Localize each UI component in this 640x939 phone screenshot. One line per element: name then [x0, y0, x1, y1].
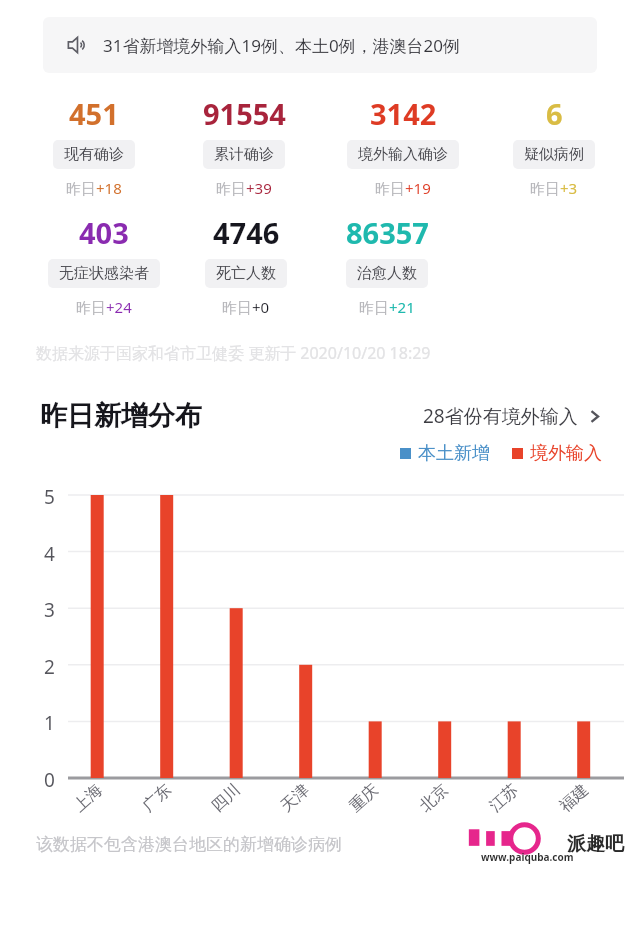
staticText: 福建	[555, 780, 593, 816]
staticText: 重庆	[345, 780, 383, 816]
staticText: 4	[44, 541, 55, 567]
staticText: 上海	[69, 780, 107, 816]
staticText: 昨日+21	[359, 297, 415, 317]
staticText: 境外输入	[530, 442, 602, 465]
button[interactable]: 451	[28, 94, 160, 198]
staticText: 无症状感染者	[59, 264, 149, 283]
staticText: 3	[44, 597, 55, 623]
staticText: 天津	[276, 780, 314, 816]
button[interactable]: 28省份有境外输入	[423, 403, 602, 429]
staticText: 数据来源于国家和省市卫健委 更新于 2020/10/20 18:29	[36, 342, 431, 364]
staticText: 本土新增	[418, 442, 490, 465]
staticText: www.paiquba.com	[481, 850, 574, 864]
staticText: 3142	[370, 94, 437, 133]
staticText: 31省新增境外输入19例、本土0例，港澳台20例	[103, 34, 461, 57]
staticText: 昨日+24	[76, 297, 132, 317]
staticText: 1	[44, 710, 55, 736]
staticText: 现有确诊	[64, 145, 124, 164]
staticText: 28省份有境外输入	[423, 403, 578, 429]
staticText: 昨日+18	[66, 178, 122, 198]
staticText: 境外输入确诊	[358, 145, 448, 164]
staticText: 广东	[138, 780, 176, 816]
staticText: 5	[44, 484, 55, 510]
staticText: 江苏	[485, 780, 523, 816]
button[interactable]: 3142	[328, 94, 478, 198]
button[interactable]: 86357	[312, 213, 462, 317]
button[interactable]: Announcement	[43, 17, 597, 73]
staticText: 北京	[415, 780, 453, 816]
staticText: 0	[44, 767, 55, 793]
staticText: 昨日+0	[222, 297, 270, 317]
staticText: 累计确诊	[214, 145, 274, 164]
staticText: 四川	[207, 780, 245, 816]
staticText: 派趣吧	[567, 832, 624, 856]
staticText: 死亡人数	[216, 264, 276, 283]
staticText: 昨日+3	[530, 178, 578, 198]
staticText: 昨日新增分布	[40, 399, 202, 433]
other: Announcement	[65, 33, 89, 57]
button[interactable]: 6	[496, 94, 612, 198]
staticText: 91554	[203, 94, 286, 133]
staticText: 6	[546, 94, 563, 133]
button[interactable]: 91554	[178, 94, 310, 198]
staticText: 昨日+19	[375, 178, 431, 198]
staticText: 86357	[346, 213, 429, 252]
staticText: 该数据不包含港澳台地区的新增确诊病例	[36, 834, 342, 855]
staticText: 昨日+39	[216, 178, 272, 198]
staticText: 403	[79, 213, 129, 252]
staticText: 451	[69, 94, 119, 133]
staticText: 治愈人数	[357, 264, 417, 283]
staticText: 2	[44, 654, 55, 680]
button[interactable]: 4746	[180, 213, 312, 317]
staticText: 疑似病例	[524, 145, 584, 164]
button[interactable]: 403	[28, 213, 180, 317]
staticText: 4746	[213, 213, 280, 252]
